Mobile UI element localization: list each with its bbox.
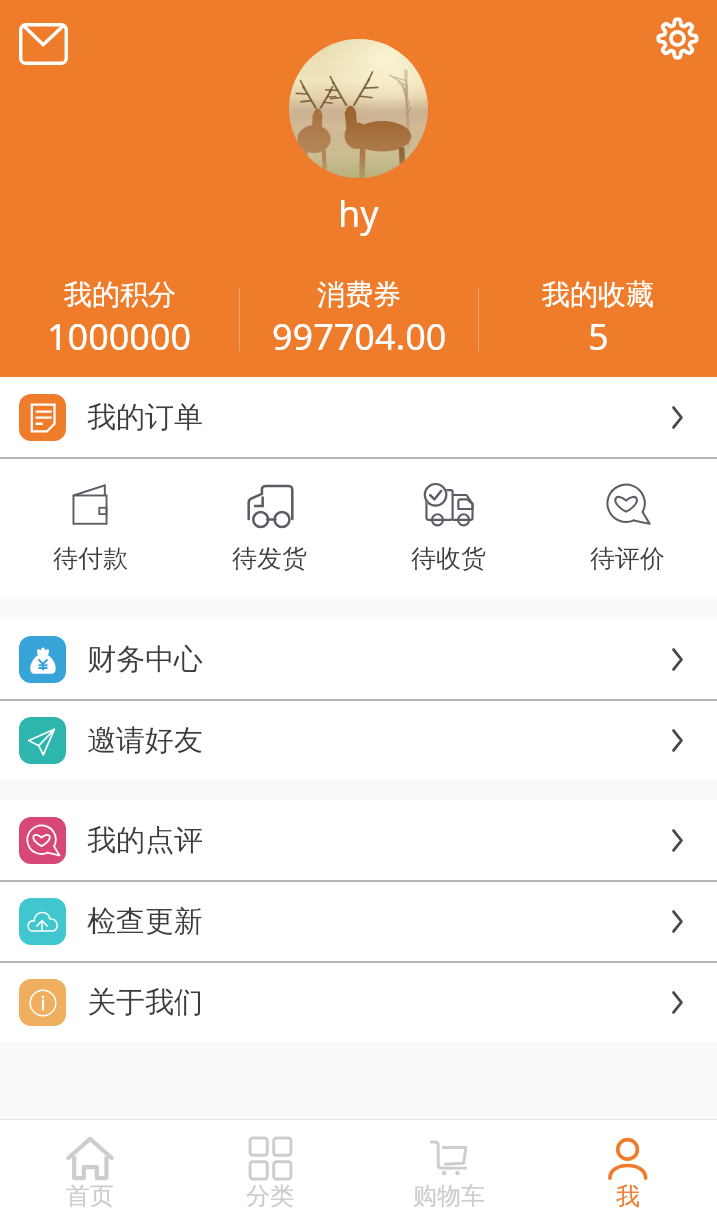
button[interactable]: 待收货 (359, 482, 538, 574)
button[interactable]: 我的订单 (0, 377, 717, 457)
button[interactable]: 首页 (0, 1120, 180, 1231)
staticText: 首页 (66, 1181, 114, 1211)
button[interactable]: Messages (10, 11, 76, 77)
staticText: 待收货 (411, 543, 486, 574)
button[interactable]: 待评价 (538, 482, 717, 574)
staticText: 我 (616, 1181, 640, 1211)
staticText: 我的收藏 (542, 277, 654, 312)
staticText: 待评价 (590, 543, 665, 574)
staticText: 关于我们 (87, 984, 203, 1021)
button[interactable]: Avatar (289, 39, 428, 178)
button[interactable]: 我的积分 (0, 277, 239, 361)
button[interactable]: 我的点评 (0, 800, 717, 881)
staticText: 我的订单 (87, 399, 203, 436)
button[interactable]: 邀请好友 (0, 700, 717, 780)
button[interactable]: 待付款 (0, 482, 180, 574)
button[interactable]: 消费券 (240, 277, 478, 361)
button[interactable]: 关于我们 (0, 962, 717, 1042)
staticText: 我的积分 (64, 277, 176, 312)
button[interactable]: Settings (644, 5, 710, 71)
button[interactable]: 我的收藏 (479, 277, 717, 361)
button[interactable]: 我 (538, 1120, 717, 1231)
staticText: 我的点评 (87, 822, 203, 859)
button[interactable]: 待发货 (180, 482, 359, 574)
staticText: 购物车 (413, 1181, 485, 1211)
staticText: 分类 (246, 1181, 294, 1211)
staticText: hy (338, 189, 379, 238)
button[interactable]: 购物车 (359, 1120, 538, 1231)
staticText: 消费券 (317, 277, 401, 312)
button[interactable]: 分类 (180, 1120, 359, 1231)
staticText: 邀请好友 (87, 722, 203, 759)
staticText: 997704.00 (272, 312, 447, 361)
staticText: 待付款 (53, 543, 128, 574)
button[interactable]: 检查更新 (0, 881, 717, 962)
staticText: 5 (588, 312, 609, 361)
staticText: 1000000 (47, 312, 192, 361)
staticText: 检查更新 (87, 903, 203, 940)
staticText: 待发货 (232, 543, 307, 574)
button[interactable]: 财务中心 (0, 619, 717, 700)
staticText: 财务中心 (87, 641, 203, 678)
